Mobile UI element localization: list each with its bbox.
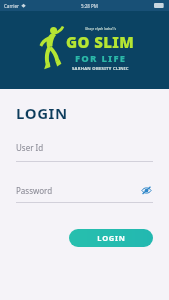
button[interactable]: Password (16, 184, 153, 203)
staticText: Ghayr elyah lasha1's (85, 27, 117, 31)
staticText: Password (16, 185, 53, 196)
staticText: Carrier (4, 3, 19, 9)
button[interactable]: User Id (16, 142, 153, 162)
staticText: GO SLIM (66, 32, 135, 52)
button[interactable]: Show password (140, 184, 153, 197)
staticText: 5:28 PM (81, 3, 98, 9)
staticText: FOR LIFE (75, 52, 127, 65)
button[interactable]: LOGIN (69, 229, 153, 247)
staticText: User Id (16, 142, 44, 153)
staticText: LOGIN (97, 233, 126, 243)
staticText: LOGIN (16, 103, 68, 123)
staticText: SARHAN OBESITY CLINIC (72, 66, 129, 72)
